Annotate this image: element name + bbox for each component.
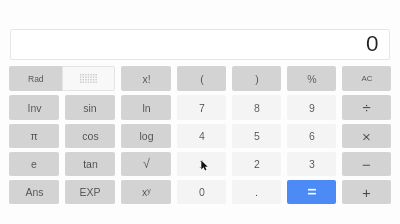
staticText: log <box>139 130 154 142</box>
staticText: 8 <box>254 102 260 114</box>
button[interactable]: AC <box>342 66 391 91</box>
button[interactable]: − <box>342 152 391 176</box>
staticText: sin <box>83 102 97 114</box>
button[interactable]: 7 <box>177 95 226 120</box>
staticText: 0 <box>199 186 205 198</box>
staticText: ) <box>255 73 259 85</box>
staticText: AC <box>361 74 373 83</box>
button[interactable]: 6 <box>287 124 336 148</box>
button[interactable]: 8 <box>232 95 281 120</box>
button[interactable]: × <box>342 124 391 148</box>
button[interactable]: sin <box>65 95 115 120</box>
button[interactable]: 0 <box>177 180 226 204</box>
button[interactable]: xy <box>121 180 171 204</box>
button[interactable]: EXP <box>65 180 115 204</box>
staticText: ( <box>200 73 204 85</box>
staticText: tan <box>83 158 98 170</box>
button[interactable]: Switch keypad <box>62 66 115 91</box>
button[interactable]: + <box>342 180 391 204</box>
staticText: EXP <box>79 186 101 198</box>
button[interactable]: Ans <box>9 180 59 204</box>
staticText: Rad <box>28 74 44 83</box>
button[interactable]: = <box>287 180 336 204</box>
staticText: 5 <box>254 130 260 142</box>
staticText: 7 <box>199 102 205 114</box>
staticText: π <box>30 130 38 142</box>
staticText: ln <box>142 102 151 114</box>
button[interactable]: 3 <box>287 152 336 176</box>
staticText: % <box>307 73 317 85</box>
staticText: 9 <box>309 102 315 114</box>
button[interactable]: ÷ <box>342 95 391 120</box>
button[interactable]: √ <box>121 152 171 176</box>
button[interactable]: 1 <box>177 152 226 176</box>
staticText: 4 <box>199 130 205 142</box>
staticText: Inv <box>27 102 42 114</box>
button[interactable]: ( <box>177 66 226 91</box>
staticText: xy <box>142 186 151 198</box>
staticText: cos <box>82 130 99 142</box>
staticText: e <box>31 158 37 170</box>
button[interactable]: % <box>287 66 336 91</box>
staticText: ÷ <box>362 99 371 116</box>
button[interactable]: 9 <box>287 95 336 120</box>
staticText: Ans <box>25 186 44 198</box>
staticText: 1 <box>199 158 205 170</box>
staticText: × <box>362 128 371 145</box>
button[interactable]: cos <box>65 124 115 148</box>
staticText: 0 <box>366 31 379 56</box>
staticText: 3 <box>309 158 315 170</box>
staticText: − <box>362 156 371 173</box>
staticText: √ <box>143 157 150 171</box>
staticText: + <box>362 184 371 201</box>
staticText: 6 <box>309 130 315 142</box>
button[interactable]: Inv <box>9 95 59 120</box>
staticText: x! <box>142 73 151 85</box>
button[interactable]: tan <box>65 152 115 176</box>
button[interactable]: 5 <box>232 124 281 148</box>
staticText: 2 <box>254 158 260 170</box>
staticText: = <box>307 183 317 201</box>
button[interactable]: log <box>121 124 171 148</box>
button[interactable]: x! <box>121 66 171 91</box>
button[interactable]: ) <box>232 66 281 91</box>
button[interactable]: ln <box>121 95 171 120</box>
button[interactable]: 2 <box>232 152 281 176</box>
button[interactable]: π <box>9 124 59 148</box>
button[interactable]: Rad <box>9 66 62 91</box>
button[interactable]: e <box>9 152 59 176</box>
button[interactable]: . <box>232 180 281 204</box>
button[interactable]: 4 <box>177 124 226 148</box>
staticText: . <box>255 186 258 198</box>
